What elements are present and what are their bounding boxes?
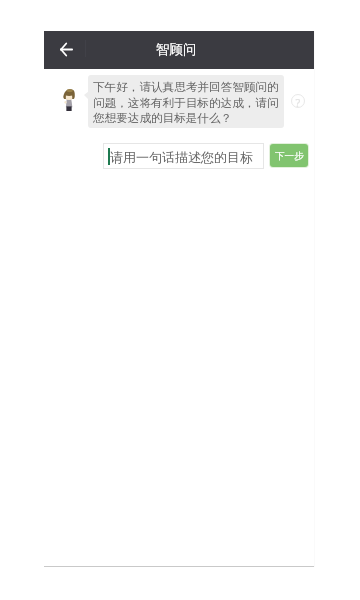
button[interactable]: 请用一句话描述您的目标 — [103, 143, 264, 169]
staticText: 智顾问 — [156, 41, 197, 58]
staticText: 请用一句话描述您的目标 — [110, 149, 253, 165]
button[interactable]: 下一步 — [269, 143, 309, 168]
staticText: ? — [295, 95, 301, 110]
staticText: 下一步 — [275, 150, 304, 162]
button[interactable]: Back — [47, 31, 85, 69]
staticText: 下午好，请认真思考并回答智顾问的问题，这将有利于目标的达成，请问您想要达成的目标… — [93, 80, 280, 125]
button[interactable]: Help — [290, 93, 306, 109]
